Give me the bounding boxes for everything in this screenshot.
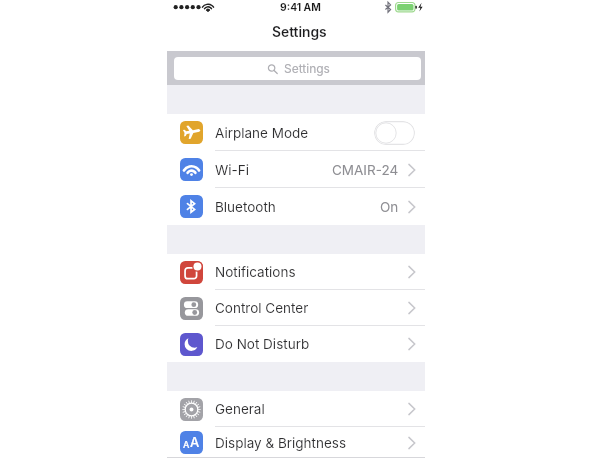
staticText: Settings bbox=[272, 24, 327, 41]
staticText: Wi-Fi bbox=[215, 162, 250, 178]
staticText: CMAIR-24 bbox=[332, 162, 399, 178]
button[interactable]: Do Not Disturb bbox=[167, 326, 425, 362]
staticText: 9:41 AM bbox=[280, 1, 321, 13]
staticText: Do Not Disturb bbox=[215, 336, 310, 352]
staticText: A bbox=[190, 434, 200, 450]
button[interactable]: A bbox=[167, 427, 425, 458]
button[interactable]: Wi-Fi bbox=[167, 151, 425, 188]
button[interactable]: General bbox=[167, 391, 425, 427]
button[interactable]: Settings bbox=[174, 57, 421, 80]
button[interactable]: Airplane Mode bbox=[167, 114, 425, 151]
button[interactable]: Control Center bbox=[167, 290, 425, 326]
staticText: Control Center bbox=[215, 300, 309, 316]
staticText: On bbox=[380, 199, 399, 215]
staticText: Display & Brightness bbox=[215, 435, 347, 451]
button[interactable]: Notifications bbox=[167, 254, 425, 290]
button[interactable]: Bluetooth bbox=[167, 188, 425, 225]
staticText: Airplane Mode bbox=[215, 125, 309, 141]
button[interactable]: Airplane Mode toggle bbox=[374, 121, 415, 145]
staticText: Bluetooth bbox=[215, 199, 276, 215]
staticText: Notifications bbox=[215, 264, 296, 280]
staticText: A bbox=[183, 439, 190, 450]
staticText: Settings bbox=[284, 61, 330, 76]
staticText: General bbox=[215, 401, 265, 417]
